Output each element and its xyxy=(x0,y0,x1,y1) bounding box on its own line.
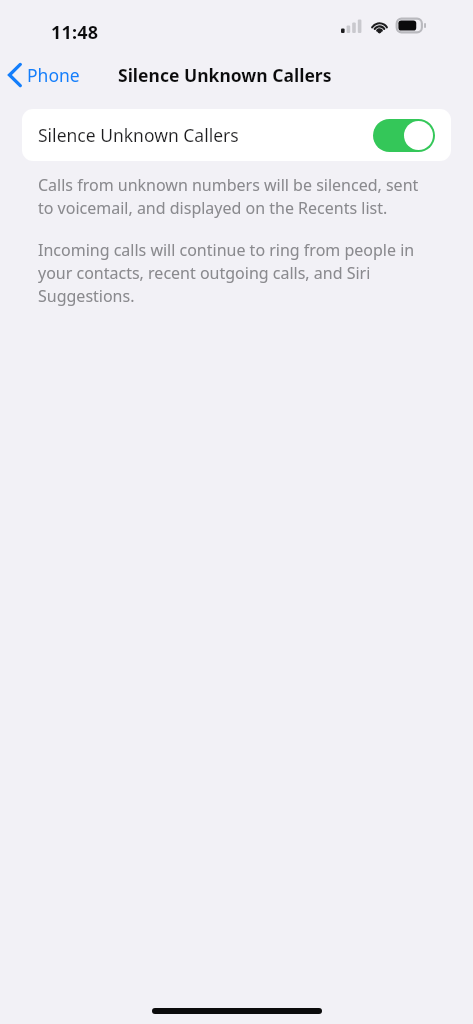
staticText: Incoming calls will continue to ring fro… xyxy=(38,239,435,307)
staticText: Silence Unknown Callers xyxy=(38,123,239,147)
staticText: Phone xyxy=(27,63,80,87)
button[interactable]: Silence Unknown Callers xyxy=(22,109,451,161)
staticText: Silence Unknown Callers xyxy=(118,63,332,87)
staticText: Calls from unknown numbers will be silen… xyxy=(38,174,435,219)
other: Back xyxy=(8,63,23,87)
button[interactable]: Back xyxy=(0,59,88,91)
staticText: 11:48 xyxy=(51,20,99,45)
button[interactable]: Silence Unknown Callers toggle xyxy=(373,119,435,152)
